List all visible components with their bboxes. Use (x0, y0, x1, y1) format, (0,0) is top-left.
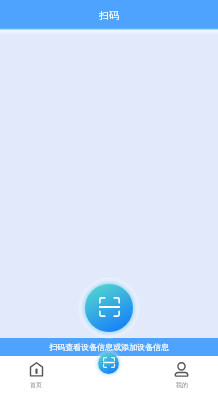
staticText: 首页 (30, 381, 42, 389)
button[interactable]: 我的 (145, 356, 218, 393)
staticText: 扫码 (99, 9, 119, 22)
staticText: 扫码查看设备信息或添加设备信息 (49, 342, 169, 352)
staticText: 我的 (176, 381, 188, 389)
button[interactable]: 扫一扫 (98, 353, 119, 374)
button[interactable]: 扫码 (78, 277, 140, 339)
button[interactable]: 扫码查看设备信息或添加设备信息 (0, 338, 218, 356)
button[interactable]: 首页 (0, 356, 72, 393)
